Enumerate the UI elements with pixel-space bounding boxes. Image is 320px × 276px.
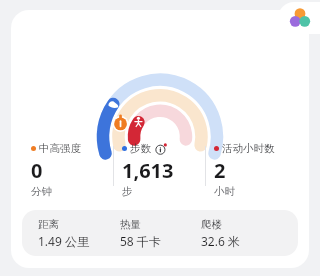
staticText: 32.6 米 — [201, 233, 240, 249]
staticText: 1,613 — [122, 157, 174, 184]
button[interactable]: 距离 — [22, 210, 298, 256]
button[interactable]: Profile — [278, 2, 320, 34]
button[interactable]: 活动小时数 — [206, 142, 297, 198]
staticText: 中高强度 — [39, 142, 81, 155]
staticText: 分钟 — [31, 185, 52, 198]
button[interactable]: 步数 — [114, 142, 205, 198]
staticText: 0 — [31, 157, 43, 184]
staticText: 小时 — [214, 185, 235, 198]
button[interactable]: 中高强度 — [11, 10, 309, 268]
staticText: 步 — [122, 185, 133, 198]
staticText: 热量 — [120, 218, 141, 231]
staticText: 活动小时数 — [222, 142, 275, 155]
button[interactable]: 中高强度 — [23, 142, 113, 198]
staticText: 步数 — [130, 142, 151, 155]
staticText: 58 千卡 — [120, 233, 161, 249]
staticText: 距离 — [38, 218, 59, 231]
staticText: 爬楼 — [201, 218, 222, 231]
button[interactable]: Info — [155, 143, 167, 155]
staticText: 2 — [214, 157, 226, 184]
staticText: 1.49 公里 — [38, 233, 89, 249]
